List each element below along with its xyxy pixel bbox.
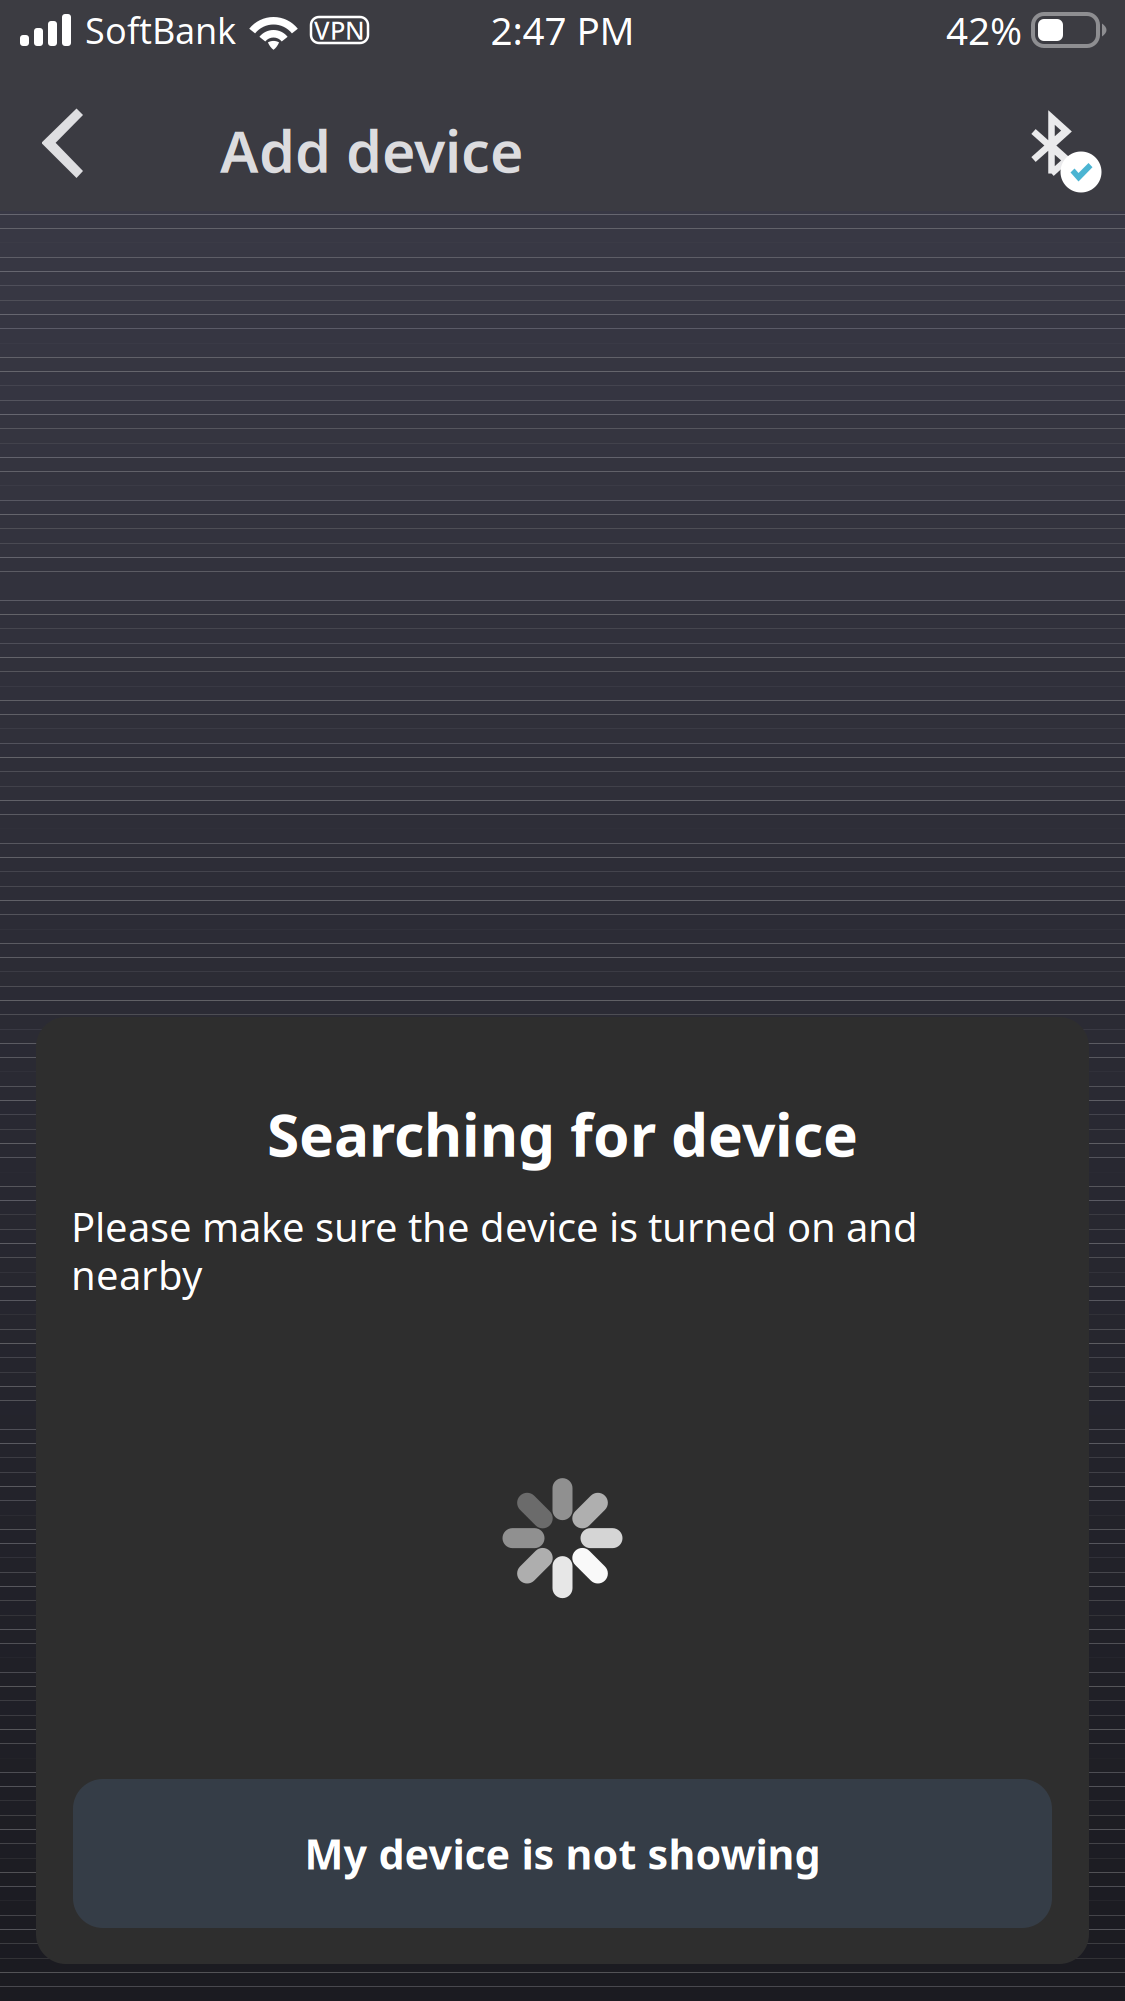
staticText: Add device bbox=[220, 112, 524, 188]
staticText: VPN bbox=[314, 13, 365, 47]
staticText: My device is not showing bbox=[304, 1826, 820, 1881]
button[interactable]: Back bbox=[0, 90, 125, 211]
staticText: nearby bbox=[71, 1248, 202, 1301]
staticText: 2:47 PM bbox=[490, 4, 634, 56]
staticText: Searching for device bbox=[267, 1095, 858, 1173]
button[interactable]: My device is not showing bbox=[73, 1779, 1052, 1928]
button[interactable]: Bluetooth connected bbox=[1007, 90, 1125, 211]
staticText: 42% bbox=[946, 4, 1022, 56]
staticText: SoftBank bbox=[85, 6, 236, 54]
staticText: Please make sure the device is turned on… bbox=[71, 1200, 918, 1253]
